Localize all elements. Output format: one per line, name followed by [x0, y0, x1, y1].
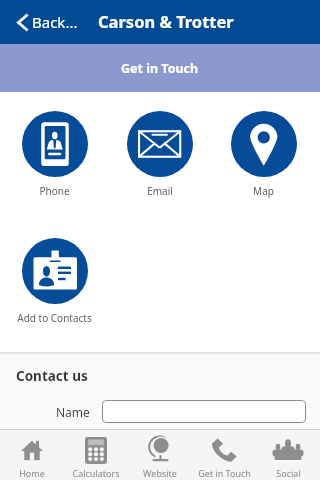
button[interactable]: Get in Touch — [192, 430, 256, 480]
staticText: Get in Touch — [198, 467, 251, 479]
staticText: Calculators — [72, 467, 120, 479]
staticText: Contact us — [16, 367, 88, 385]
staticText: Add to Contacts — [17, 311, 92, 325]
button[interactable]: Website — [128, 430, 192, 480]
button[interactable]: Phone — [2, 111, 107, 198]
button[interactable]: Email — [107, 111, 212, 198]
staticText: Name — [56, 404, 90, 420]
button[interactable]: Map — [211, 111, 316, 198]
button[interactable]: Add to Contacts — [2, 238, 107, 325]
other: Email — [127, 111, 193, 177]
other: Add to Contacts — [22, 238, 88, 304]
staticText: Social — [276, 467, 301, 479]
other: Phone — [22, 111, 88, 177]
button[interactable]: Back... — [0, 6, 88, 38]
button[interactable]: Calculators — [64, 430, 128, 480]
button[interactable]: Social — [256, 430, 320, 480]
other: Map — [231, 111, 297, 177]
staticText: Home — [19, 467, 45, 479]
staticText: Website — [143, 467, 177, 479]
staticText: Carson & Trotter — [98, 10, 234, 32]
button[interactable]: Name input — [102, 400, 306, 423]
staticText: Map — [253, 184, 274, 198]
button[interactable]: Get in Touch — [0, 44, 320, 92]
staticText: Phone — [39, 184, 70, 198]
staticText: Get in Touch — [121, 60, 199, 77]
staticText: Back... — [32, 12, 78, 32]
button[interactable]: Home — [0, 430, 64, 480]
staticText: Email — [147, 184, 173, 198]
